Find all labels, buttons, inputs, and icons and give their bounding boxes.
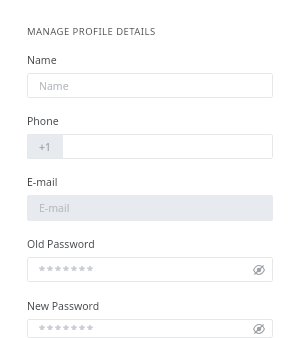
staticText: *: [39, 321, 45, 336]
button[interactable]: Show password: [251, 321, 266, 336]
staticText: Phone: [27, 114, 59, 128]
staticText: E-mail: [39, 201, 70, 215]
staticText: New Password: [27, 299, 100, 313]
button[interactable]: +1: [27, 134, 273, 159]
staticText: *: [79, 321, 85, 336]
staticText: *: [87, 321, 93, 336]
button[interactable]: *: [27, 319, 273, 338]
staticText: *: [71, 321, 77, 336]
staticText: *: [79, 262, 85, 277]
staticText: *: [47, 262, 53, 277]
button[interactable]: Name: [27, 73, 273, 98]
button[interactable]: Show password: [251, 262, 266, 277]
staticText: *: [63, 321, 69, 336]
staticText: +1: [39, 140, 52, 154]
staticText: Name: [27, 53, 57, 67]
staticText: *: [39, 262, 45, 277]
staticText: E-mail: [27, 175, 58, 189]
staticText: *: [63, 262, 69, 277]
staticText: *: [87, 262, 93, 277]
staticText: *: [47, 321, 53, 336]
button[interactable]: E-mail: [27, 195, 273, 221]
staticText: Name: [39, 79, 69, 93]
staticText: Old Password: [27, 237, 95, 251]
button[interactable]: *: [27, 257, 273, 282]
staticText: *: [71, 262, 77, 277]
staticText: *: [55, 321, 61, 336]
staticText: MANAGE PROFILE DETAILS: [27, 25, 156, 38]
staticText: *: [55, 262, 61, 277]
